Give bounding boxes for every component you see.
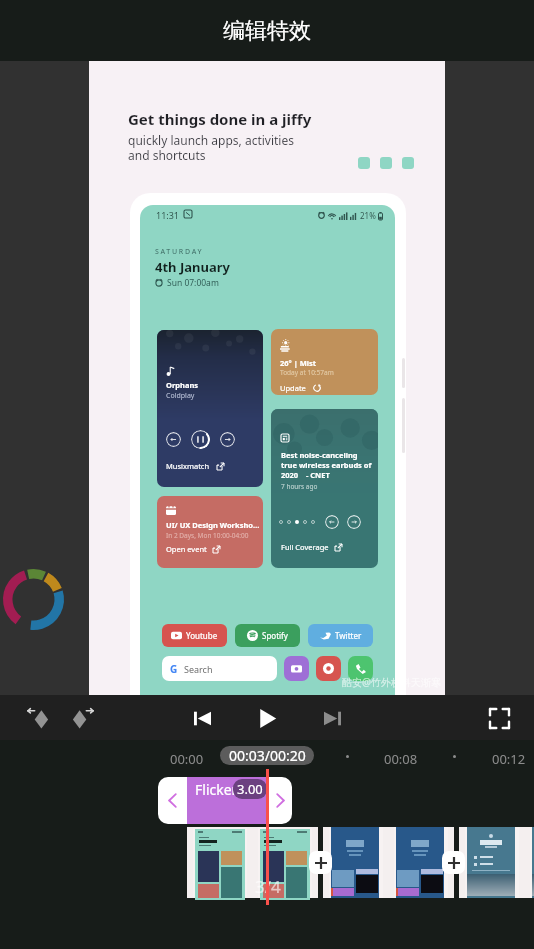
staticText: G	[170, 662, 178, 676]
button[interactable]: Best noise-canceling true wireless earbu…	[271, 409, 378, 568]
staticText: Best noise-canceling true wireless earbu…	[281, 450, 372, 480]
staticText: Full Coverage	[281, 542, 329, 552]
button[interactable]: 26° | Mist	[271, 329, 378, 395]
button[interactable]: Skip to start	[183, 699, 221, 737]
staticText: Orphans	[166, 380, 199, 390]
button[interactable]: Twitter	[308, 624, 373, 647]
staticText: 4th January	[155, 258, 230, 276]
staticText: 3/4	[255, 875, 281, 898]
staticText: 00:08	[384, 750, 418, 768]
staticText: 00:03/00:20	[229, 746, 306, 765]
button[interactable]: Fullscreen	[480, 699, 518, 737]
staticText: Update	[280, 383, 306, 393]
button[interactable]: Play	[248, 699, 286, 737]
button[interactable]: Flicker	[158, 777, 292, 824]
staticText: Spotify	[262, 630, 288, 641]
staticText: 3.00	[237, 780, 263, 798]
staticText: Youtube	[186, 630, 218, 641]
button[interactable]	[323, 827, 454, 898]
staticText: Coldplay	[166, 391, 195, 401]
staticText: 26° | Mist	[280, 358, 317, 368]
button[interactable]: Skip to end	[313, 699, 351, 737]
button[interactable]: Next	[220, 432, 235, 447]
staticText: Sun 07:00am	[167, 277, 219, 289]
staticText: SATURDAY	[155, 247, 204, 257]
staticText: 21%	[360, 210, 376, 221]
button[interactable]: Orphans	[157, 330, 263, 487]
button[interactable]: Camera	[284, 656, 309, 681]
staticText: Search	[184, 663, 213, 675]
button[interactable]: UI/ UX Design Worksho…	[157, 496, 263, 568]
staticText: 11:31	[156, 209, 180, 221]
button[interactable]: Pause	[191, 430, 210, 449]
staticText: 00:12	[492, 750, 526, 768]
button[interactable]: G	[162, 656, 277, 681]
staticText: In 2 Days, Mon 10:00-04:00	[166, 531, 249, 540]
staticText: 7 hours ago	[281, 482, 318, 491]
staticText: 编辑特效	[223, 17, 311, 45]
staticText: Get things done in a jiffy	[128, 109, 312, 129]
staticText: 酷安@竹外枝斜天渐寒	[342, 675, 441, 689]
staticText: Musixmatch	[166, 461, 210, 471]
staticText: Twitter	[335, 630, 362, 641]
button[interactable]: Spotify	[235, 624, 300, 647]
staticText: quickly launch apps, activities and shor…	[128, 132, 294, 163]
staticText: 00:00	[170, 750, 204, 768]
button[interactable]: Add clip	[309, 851, 332, 874]
staticText: Flicker	[195, 780, 238, 799]
button[interactable]: Phone	[348, 656, 373, 681]
button[interactable]: Previous	[166, 432, 181, 447]
button[interactable]	[187, 827, 318, 898]
button[interactable]: Next article	[347, 515, 361, 529]
button[interactable]	[459, 827, 534, 898]
button[interactable]: Previous article	[325, 515, 339, 529]
staticText: UI/ UX Design Worksho…	[166, 520, 260, 530]
button[interactable]: Browser	[316, 656, 341, 681]
button[interactable]: Next keyframe	[63, 699, 101, 737]
button[interactable]: Add clip	[442, 851, 465, 874]
button[interactable]: Youtube	[162, 624, 227, 647]
button[interactable]: Previous keyframe	[20, 699, 58, 737]
staticText: Today at 10:57am	[280, 368, 334, 377]
staticText: Open event	[166, 544, 207, 554]
